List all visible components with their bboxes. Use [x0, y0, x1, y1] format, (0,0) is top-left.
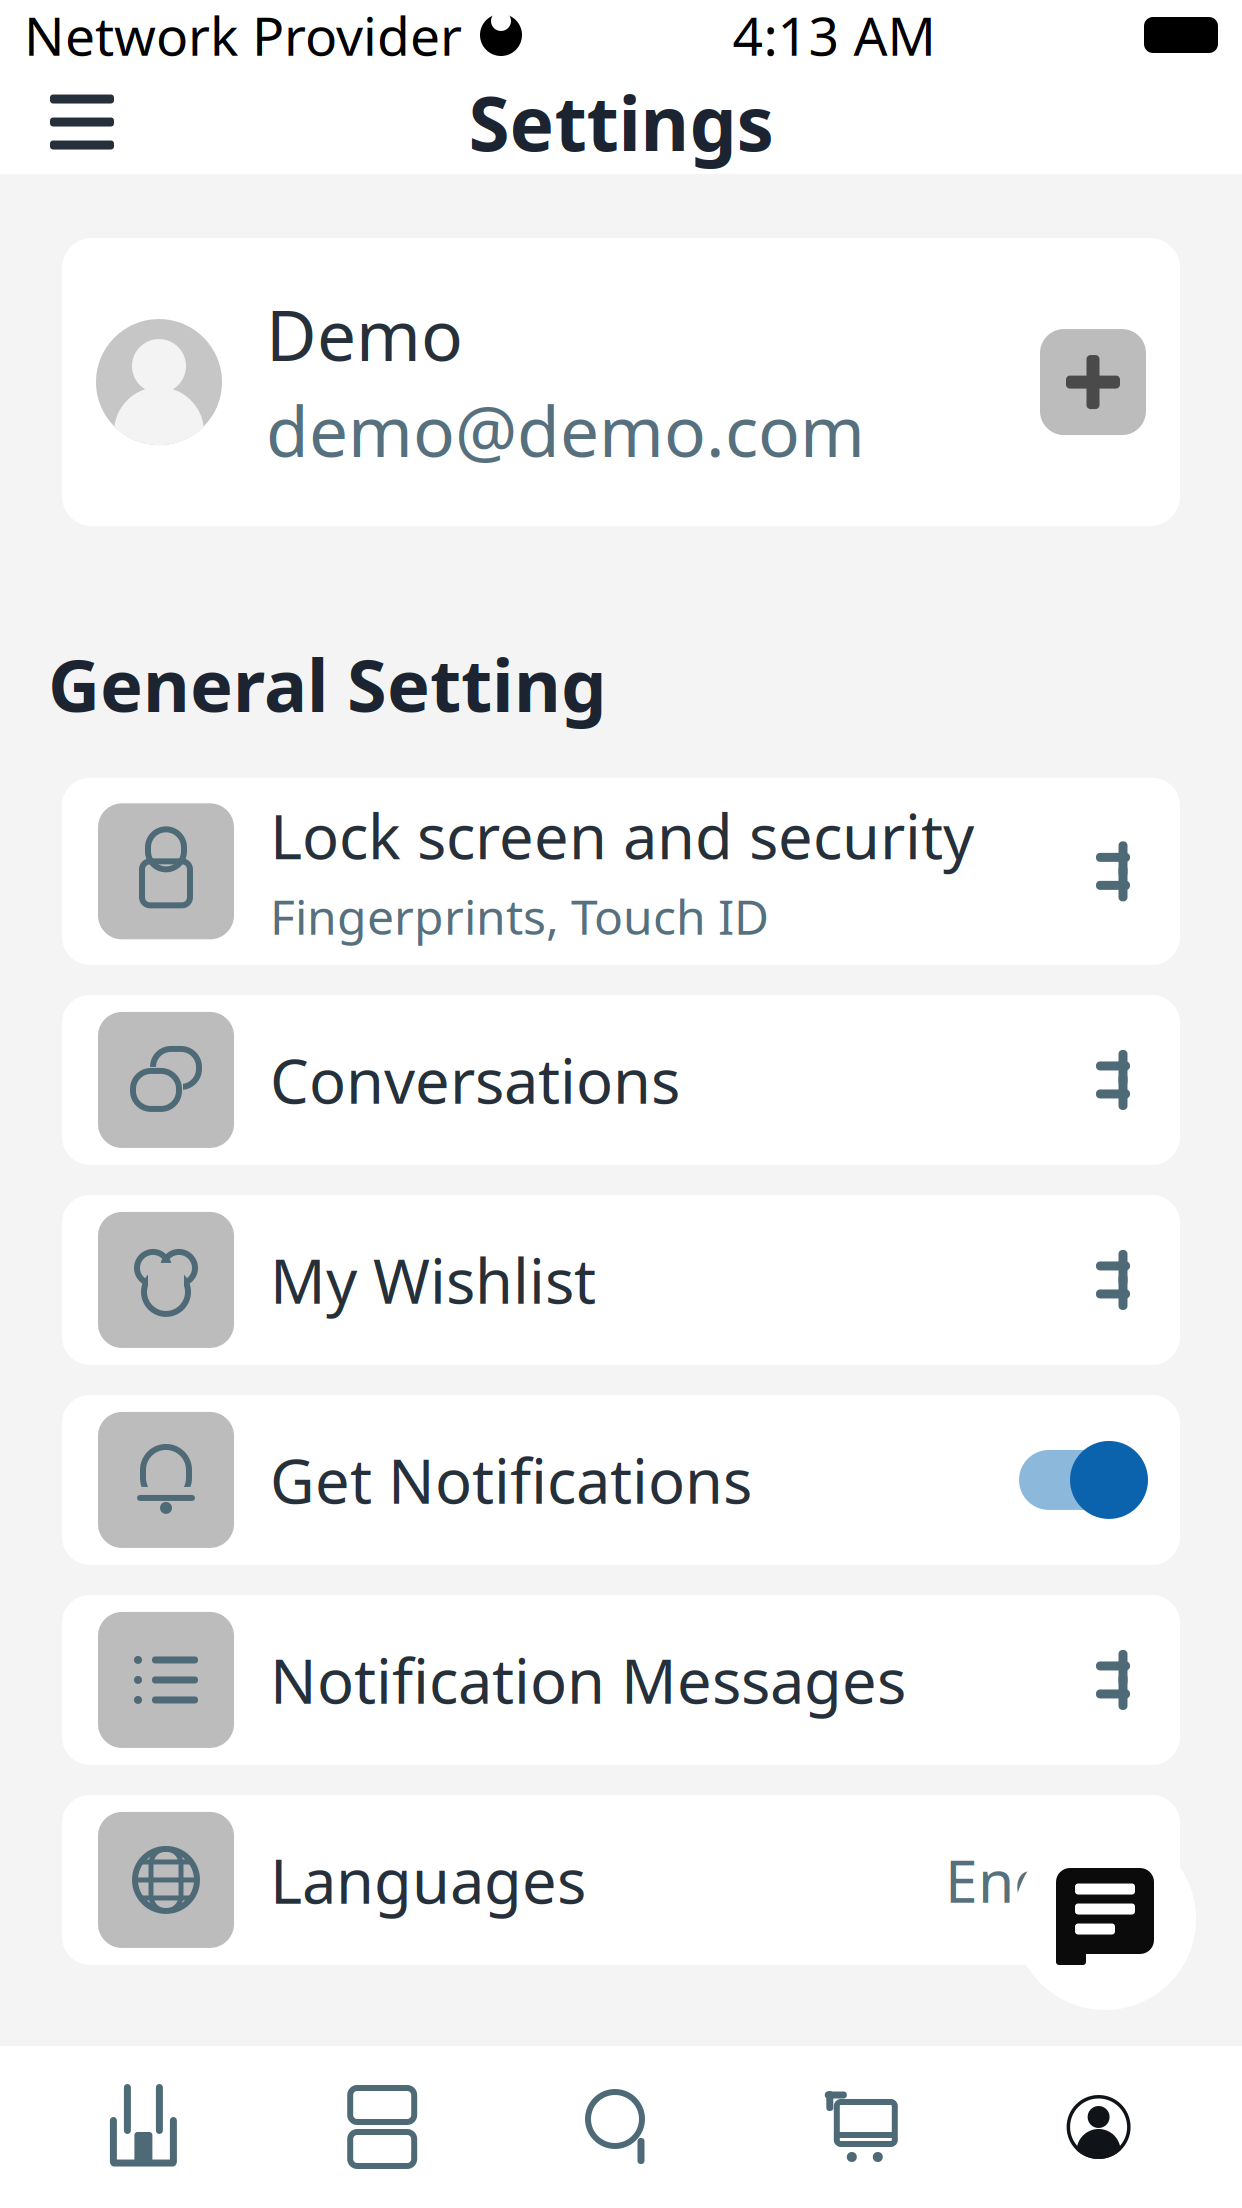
- button[interactable]: Cart: [740, 2046, 979, 2208]
- button[interactable]: Account: [979, 2046, 1218, 2208]
- staticText: Lock screen and security: [270, 795, 974, 876]
- button[interactable]: Languages: [62, 1795, 1180, 1965]
- staticText: 4:13 AM: [732, 0, 935, 70]
- staticText: Languages: [270, 1839, 586, 1921]
- staticText: Fingerprints, Touch ID: [270, 884, 769, 948]
- button[interactable]: My Wishlist: [62, 1195, 1180, 1365]
- button[interactable]: Demo: [62, 238, 1180, 526]
- staticText: Conversations: [270, 1039, 680, 1121]
- staticText: General Setting: [48, 636, 607, 732]
- staticText: Notification Messages: [270, 1639, 906, 1721]
- button[interactable]: Lock screen and security: [62, 778, 1180, 965]
- button[interactable]: Notification Messages: [62, 1595, 1180, 1765]
- button[interactable]: Edit profile: [1040, 329, 1146, 435]
- staticText: English: [945, 1841, 1144, 1919]
- button[interactable]: Chat: [1014, 1828, 1196, 2010]
- staticText: Demo: [266, 288, 463, 380]
- button[interactable]: Conversations: [62, 995, 1180, 1165]
- staticText: Get Notifications: [270, 1439, 752, 1521]
- button[interactable]: Menu: [32, 72, 132, 172]
- staticText: Network Provider: [24, 0, 462, 70]
- staticText: My Wishlist: [270, 1239, 596, 1321]
- staticText: Settings: [468, 72, 773, 172]
- button[interactable]: Categories: [263, 2046, 502, 2208]
- button[interactable]: Get Notifications: [62, 1395, 1180, 1565]
- button[interactable]: Search: [502, 2046, 740, 2208]
- button[interactable]: Home: [24, 2046, 263, 2208]
- staticText: demo@demo.com: [266, 384, 865, 476]
